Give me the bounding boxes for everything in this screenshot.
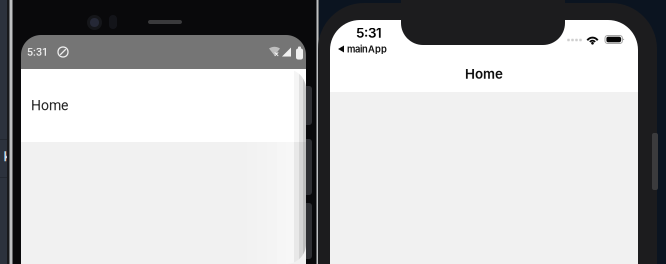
button[interactable]: Home	[31, 69, 68, 142]
staticText: ×	[274, 48, 279, 59]
staticText: k	[3, 148, 11, 164]
button[interactable]: mainApp	[338, 43, 408, 55]
staticText: Home	[31, 97, 68, 114]
staticText: 5:31	[356, 25, 382, 41]
staticText: 5:31	[27, 46, 48, 58]
staticText: Home	[465, 66, 503, 82]
staticText: mainApp	[347, 43, 387, 55]
